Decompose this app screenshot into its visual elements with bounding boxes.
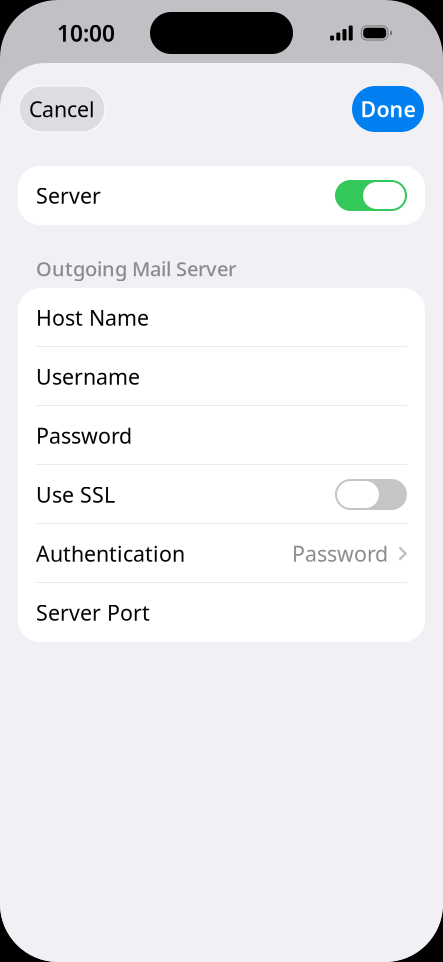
staticText: Use SSL xyxy=(36,480,115,509)
button[interactable]: Cancel xyxy=(19,86,105,132)
staticText: Password xyxy=(292,539,388,568)
staticText: Password xyxy=(36,421,132,450)
button[interactable]: Server xyxy=(18,166,425,225)
staticText: Server Port xyxy=(36,598,150,627)
staticText: Username xyxy=(36,362,140,391)
button[interactable]: Server Port xyxy=(18,583,425,642)
button[interactable]: Use SSL xyxy=(18,465,425,524)
staticText: Host Name xyxy=(36,303,149,332)
button[interactable]: Password xyxy=(18,406,425,465)
button[interactable]: Host Name xyxy=(18,288,425,347)
button[interactable]: Username xyxy=(18,347,425,406)
staticText: Server xyxy=(36,181,101,210)
staticText: Outgoing Mail Server xyxy=(36,255,236,282)
staticText: Cancel xyxy=(29,95,95,123)
staticText: Done xyxy=(360,95,415,123)
button[interactable]: Done xyxy=(352,86,424,132)
button[interactable]: Authentication xyxy=(18,524,425,583)
staticText: Authentication xyxy=(36,539,185,568)
staticText: 10:00 xyxy=(57,18,115,48)
